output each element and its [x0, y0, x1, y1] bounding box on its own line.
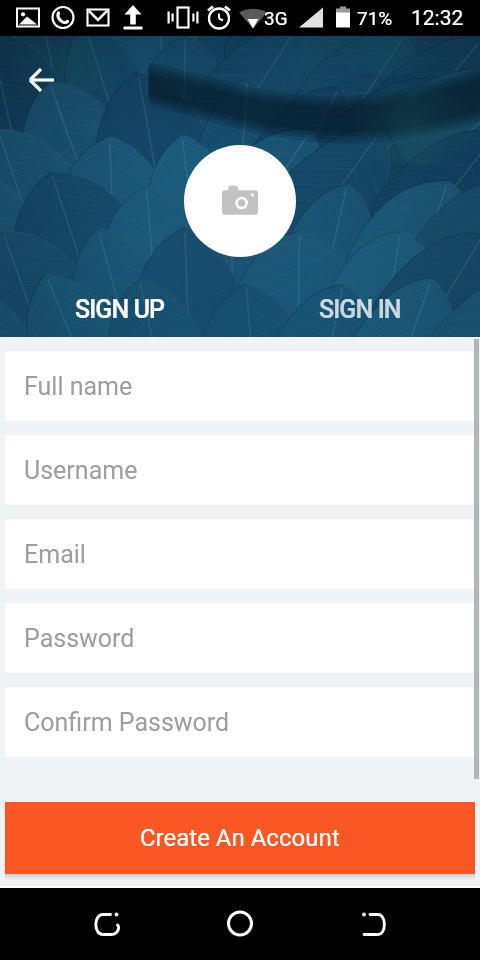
staticText: SIGN IN	[319, 295, 401, 324]
staticText: Confirm Password	[24, 708, 230, 737]
staticText: 12:32	[411, 6, 464, 31]
button[interactable]: Add profile photo	[184, 145, 296, 257]
button[interactable]: Back	[20, 58, 64, 102]
button[interactable]: Email	[5, 519, 475, 589]
button[interactable]: Confirm Password	[5, 687, 475, 757]
staticText: Full name	[24, 372, 133, 401]
button[interactable]: Full name	[5, 351, 475, 421]
staticText: SIGN UP	[75, 295, 165, 324]
staticText: Password	[24, 624, 135, 653]
staticText: Username	[24, 456, 138, 485]
staticText: Create An Account	[140, 824, 340, 852]
staticText: 3G	[264, 7, 288, 29]
button[interactable]: Username	[5, 435, 475, 505]
button[interactable]: Create An Account	[5, 802, 475, 874]
button[interactable]: Home	[218, 900, 262, 944]
button[interactable]: SIGN IN	[240, 281, 480, 337]
button[interactable]: Recent apps	[353, 900, 397, 944]
staticText: Email	[24, 540, 86, 569]
staticText: 71%	[357, 7, 393, 29]
button[interactable]: Password	[5, 603, 475, 673]
button[interactable]: Back	[85, 900, 129, 944]
button[interactable]: SIGN UP	[0, 281, 240, 337]
